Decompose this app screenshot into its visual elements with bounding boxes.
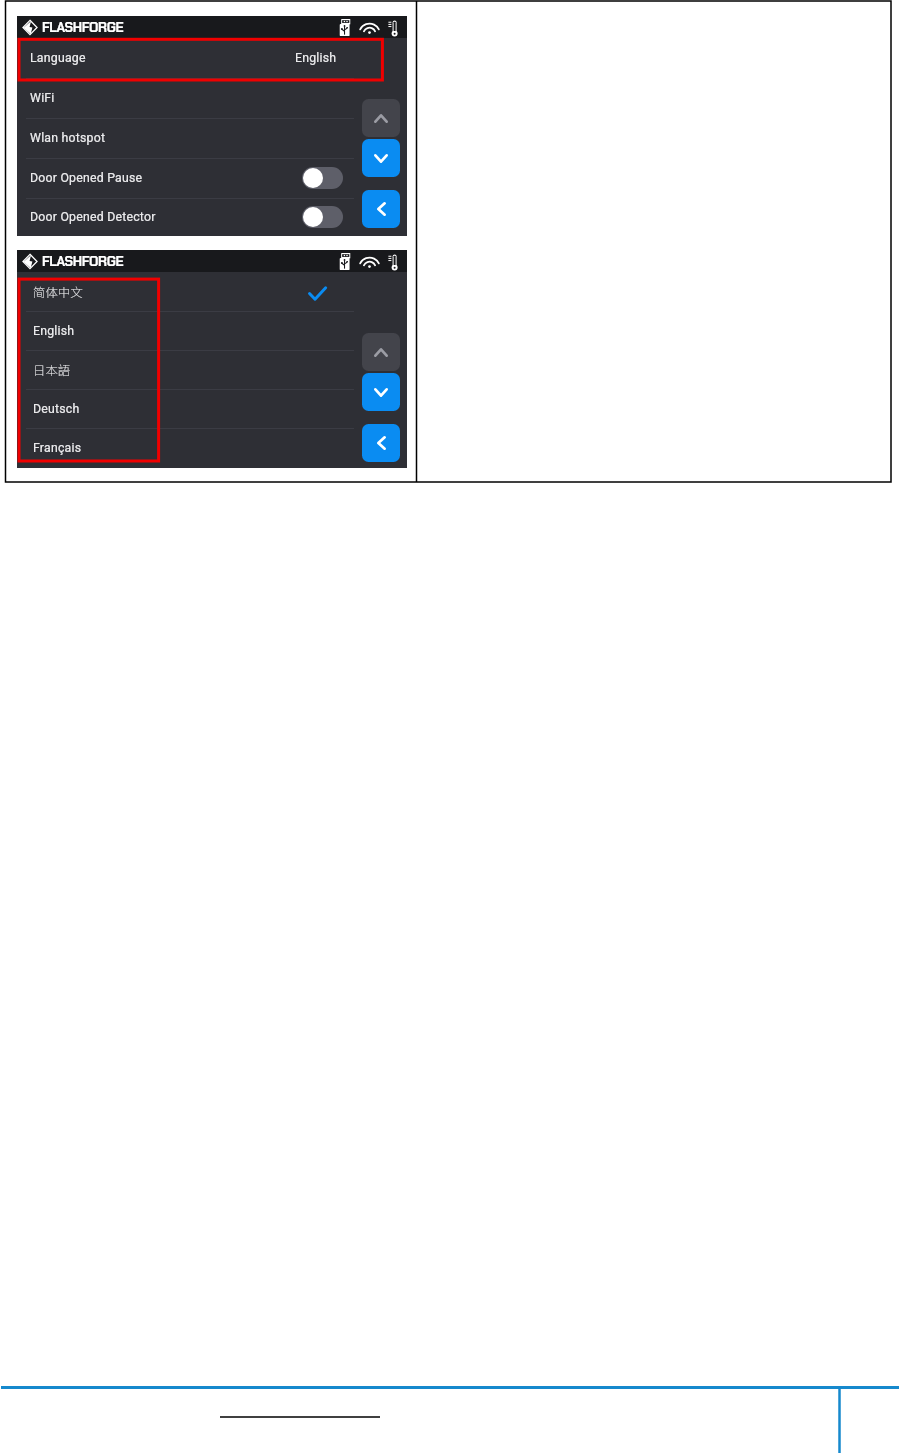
button[interactable]: 日本語: [17, 350, 407, 389]
button[interactable]: Toggle, off: [302, 206, 343, 228]
button[interactable]: Language: [17, 38, 407, 78]
staticText: FLASHFORGE: [42, 19, 124, 36]
button[interactable]: Back: [362, 190, 400, 228]
staticText: English: [33, 324, 75, 338]
staticText: 简体中文: [33, 283, 83, 301]
staticText: Deutsch: [33, 402, 80, 416]
staticText: FLASHFORGE: [42, 253, 124, 270]
staticText: English: [295, 51, 337, 65]
button[interactable]: WiFi: [17, 78, 407, 118]
button[interactable]: Scroll up: [362, 333, 400, 371]
button[interactable]: Wlan hotspot: [17, 118, 407, 158]
staticText: Door Opened Pause: [30, 171, 143, 185]
button[interactable]: Door Opened Detector: [17, 198, 407, 236]
staticText: Wlan hotspot: [30, 131, 106, 145]
button[interactable]: 简体中文: [17, 272, 407, 311]
staticText: 日本語: [33, 361, 71, 379]
staticText: Language: [30, 51, 86, 65]
button[interactable]: Deutsch: [17, 389, 407, 428]
button[interactable]: Toggle, off: [302, 167, 343, 189]
staticText: Door Opened Detector: [30, 210, 156, 224]
button[interactable]: Door Opened Pause: [17, 158, 407, 198]
button[interactable]: Back: [362, 424, 400, 462]
button[interactable]: Scroll up: [362, 99, 400, 137]
button[interactable]: Scroll down: [362, 139, 400, 177]
button[interactable]: English: [17, 311, 407, 350]
button[interactable]: Scroll down: [362, 373, 400, 411]
button[interactable]: Français: [17, 428, 407, 467]
staticText: WiFi: [30, 91, 55, 105]
staticText: Français: [33, 441, 82, 455]
